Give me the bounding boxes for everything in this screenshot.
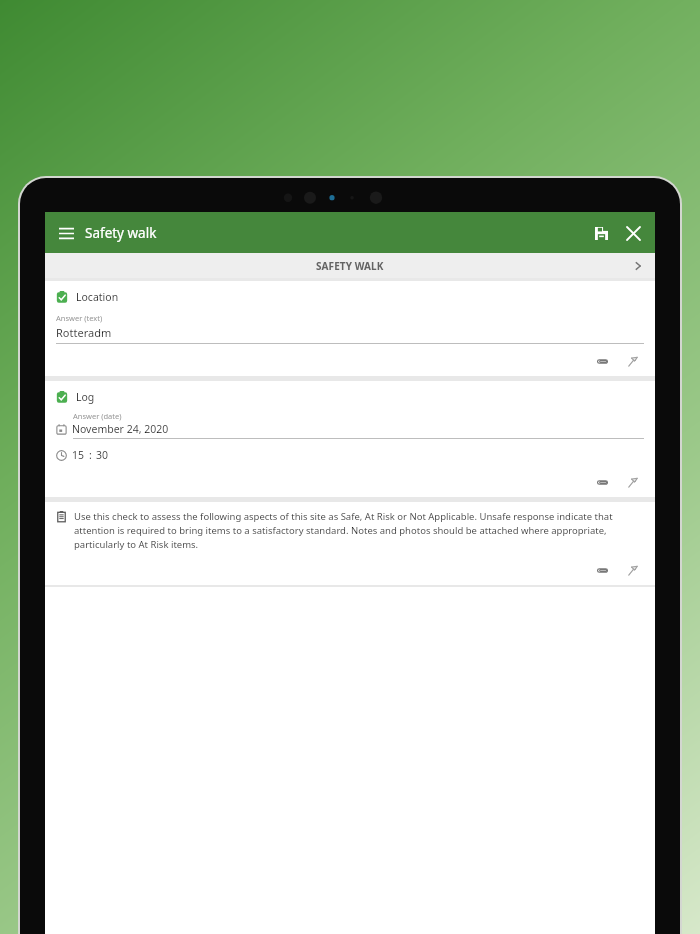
button[interactable]: Menu [53, 220, 79, 246]
button[interactable]: Close [618, 218, 648, 248]
staticText: Use this check to assess the following a… [74, 510, 644, 551]
button[interactable]: SAFETY WALK [45, 253, 655, 278]
button[interactable]: Raise issue [621, 559, 643, 581]
staticText: : [89, 448, 92, 462]
staticText: Location [76, 290, 119, 304]
staticText: SAFETY WALK [316, 259, 384, 273]
staticText: Rotteradm [56, 325, 112, 340]
staticText: 15 [72, 448, 85, 462]
staticText: November 24, 2020 [72, 422, 169, 436]
staticText: Log [76, 390, 95, 404]
staticText: Answer (date) [73, 411, 122, 421]
staticText: Safety walk [85, 224, 157, 242]
other: Next section [630, 258, 646, 274]
staticText: Answer (text) [56, 313, 103, 323]
button[interactable]: Raise issue [621, 471, 643, 493]
staticText: 30 [96, 448, 109, 462]
button[interactable]: Save [586, 218, 616, 248]
button[interactable]: Attach file [591, 471, 613, 493]
button[interactable]: Attach file [591, 559, 613, 581]
button[interactable]: Raise issue [621, 350, 643, 372]
button[interactable]: Attach file [591, 350, 613, 372]
